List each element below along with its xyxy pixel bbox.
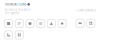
button[interactable]: Spacing bbox=[37, 19, 45, 28]
button[interactable]: Typography bbox=[15, 19, 23, 28]
button[interactable]: Motion bbox=[4, 31, 13, 39]
button[interactable]: Iconography bbox=[47, 19, 55, 28]
button[interactable]: Elevation bbox=[58, 19, 66, 28]
staticText: COMPONENTS bbox=[76, 9, 95, 12]
button[interactable]: Shape bbox=[26, 19, 34, 28]
button[interactable]: Text Field bbox=[87, 19, 95, 27]
button[interactable]: Button bbox=[76, 19, 84, 27]
staticText: FOUNDATIONS bbox=[4, 3, 26, 6]
staticText: Building blocks of the system bbox=[4, 8, 30, 15]
button[interactable]: Color bbox=[4, 19, 13, 28]
button[interactable]: Grid bbox=[15, 31, 23, 39]
